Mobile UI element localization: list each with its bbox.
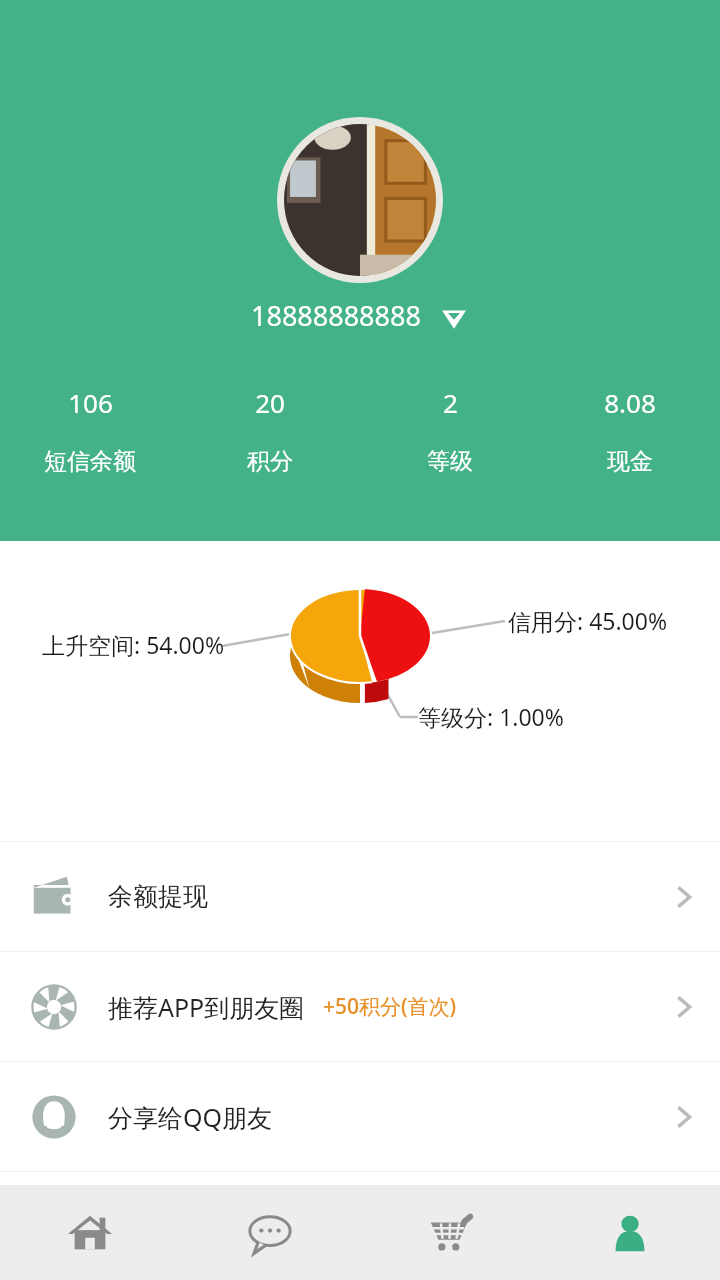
button[interactable]: Messages: [180, 1185, 360, 1280]
button[interactable]: 20: [180, 385, 360, 476]
button[interactable]: 106: [0, 385, 180, 476]
button[interactable]: Home: [0, 1185, 180, 1280]
staticText: 分享给QQ朋友: [108, 1100, 273, 1134]
staticText: 等级: [427, 447, 473, 476]
button[interactable]: Profile: [540, 1185, 720, 1280]
staticText: 上升空间: 54.00%: [42, 629, 225, 660]
staticText: 现金: [607, 447, 653, 476]
button[interactable]: 推荐APP到朋友圈: [0, 952, 720, 1061]
staticText: 等级分: 1.00%: [418, 701, 564, 732]
staticText: 8.08: [604, 385, 656, 420]
staticText: 推荐APP到朋友圈: [108, 990, 305, 1024]
staticText: 18888888888: [251, 297, 421, 334]
staticText: 短信余额: [44, 447, 136, 476]
staticText: 余额提现: [108, 881, 208, 912]
button[interactable]: Cart: [360, 1185, 540, 1280]
button[interactable]: 8.08: [540, 385, 720, 476]
staticText: 2: [443, 385, 458, 420]
button[interactable]: 分享给QQ朋友: [0, 1062, 720, 1171]
staticText: 106: [68, 385, 113, 420]
staticText: 20: [255, 385, 285, 420]
button[interactable]: Profile photo: [277, 117, 443, 283]
button[interactable]: 余额提现: [0, 842, 720, 951]
staticText: 积分: [247, 447, 293, 476]
button[interactable]: 2: [360, 385, 540, 476]
staticText: 信用分: 45.00%: [508, 605, 668, 636]
staticText: +50积分(首次): [323, 992, 457, 1021]
